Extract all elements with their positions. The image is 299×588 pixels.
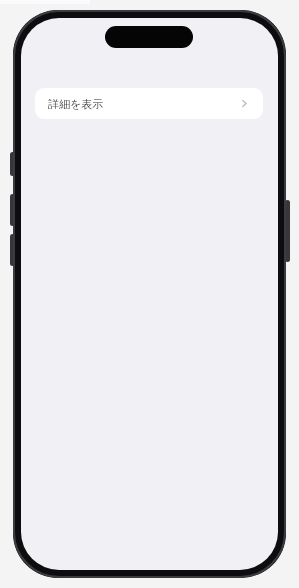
button[interactable]: 詳細を表示 xyxy=(35,88,263,119)
other: 詳細を表示 xyxy=(239,98,250,109)
staticText: 詳細を表示 xyxy=(48,97,104,111)
